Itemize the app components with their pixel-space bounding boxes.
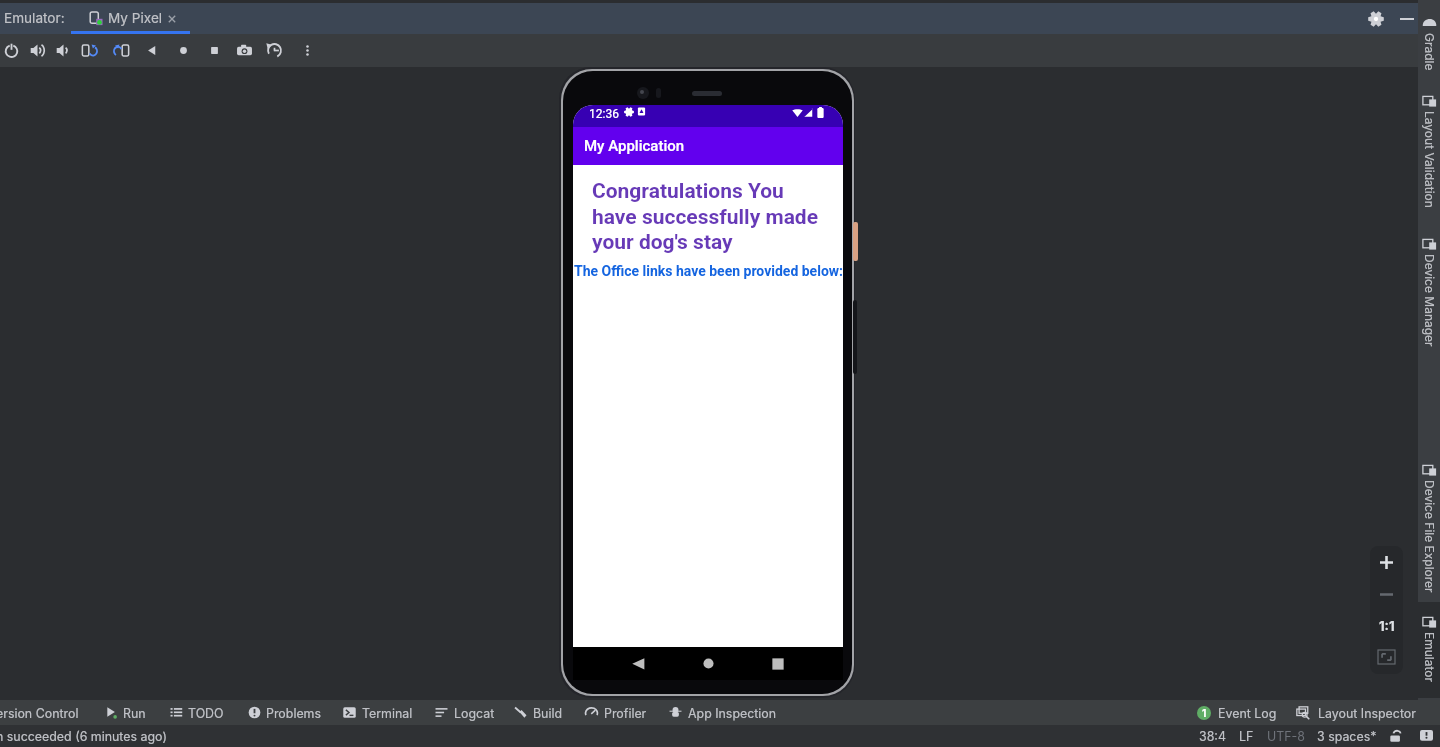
button[interactable]: App Inspection — [669, 700, 763, 725]
staticText: TODO — [188, 706, 224, 721]
staticText: App Inspection — [688, 706, 777, 721]
staticText: LF — [1239, 729, 1254, 744]
staticText: Layout Validation — [1422, 111, 1437, 208]
staticText: Terminal — [362, 706, 413, 721]
button[interactable]: ersion Control — [0, 700, 83, 725]
button[interactable]: More — [299, 42, 316, 59]
staticText: Run — [123, 706, 146, 721]
staticText: Emulator — [1422, 632, 1437, 682]
button[interactable]: Build — [514, 700, 608, 725]
button[interactable]: Volume down — [55, 42, 72, 59]
button[interactable]: Read-only toggle — [1389, 730, 1402, 743]
staticText: 3 spaces* — [1317, 729, 1377, 744]
staticText: Layout Inspector — [1318, 706, 1416, 721]
button[interactable]: Overview — [206, 42, 223, 59]
button[interactable]: Snapshots — [266, 42, 283, 59]
button[interactable]: Zoom out — [1370, 579, 1403, 610]
staticText: ersion Control — [0, 706, 79, 721]
button[interactable]: Rotate left — [81, 42, 98, 59]
button[interactable]: Run — [105, 700, 198, 725]
staticText: Problems — [266, 706, 322, 721]
button[interactable]: Power — [3, 42, 20, 59]
button[interactable]: Gradle — [1418, 31, 1440, 75]
button[interactable]: Profiler — [585, 700, 679, 725]
button[interactable]: 1:1 — [1370, 610, 1403, 641]
staticText: 1 — [1202, 707, 1207, 719]
button[interactable]: Home — [175, 42, 192, 59]
staticText: My Application — [584, 137, 685, 155]
staticText: Logcat — [454, 706, 495, 721]
staticText: Congratulations You have successfully ma… — [592, 179, 824, 254]
staticText: The Office links have been provided belo… — [574, 263, 843, 279]
button[interactable]: My Pixel — [71, 3, 190, 34]
staticText: Device Manager — [1422, 254, 1437, 347]
button[interactable]: Notifications — [1423, 718, 1436, 731]
staticText: 12:36 — [589, 107, 619, 121]
button[interactable]: 1 — [1197, 700, 1256, 725]
button[interactable]: Hide — [1399, 11, 1415, 27]
staticText: Emulator: — [4, 10, 65, 26]
button[interactable]: Emulator — [1418, 613, 1440, 688]
staticText: Gradle — [1422, 33, 1437, 71]
button[interactable]: My Application — [573, 127, 843, 165]
button[interactable]: Back — [144, 42, 161, 59]
button[interactable]: Device Manager — [1418, 235, 1440, 345]
staticText: Profiler — [604, 706, 647, 721]
staticText: h succeeded (6 minutes ago) — [0, 729, 167, 744]
button[interactable]: Home — [703, 658, 714, 669]
button[interactable]: Back — [632, 658, 645, 671]
button[interactable]: TODO — [170, 700, 263, 725]
button[interactable]: Device File Explorer — [1418, 461, 1440, 591]
staticText: Device File Explorer — [1422, 480, 1437, 593]
button[interactable]: Fit to screen — [1370, 641, 1403, 672]
button[interactable]: Zoom in — [1370, 546, 1403, 579]
staticText: Event Log — [1218, 706, 1277, 721]
button[interactable]: Volume up — [29, 42, 46, 59]
button[interactable]: Layout Validation — [1418, 92, 1440, 217]
button[interactable]: Settings — [1368, 11, 1384, 27]
button[interactable]: Recent apps — [772, 658, 784, 670]
button[interactable]: Problems — [248, 700, 341, 725]
button[interactable]: Rotate right — [113, 42, 130, 59]
button[interactable]: Terminal — [343, 700, 437, 725]
button[interactable]: Take screenshot — [236, 42, 253, 59]
button[interactable]: Logcat — [435, 700, 529, 725]
button[interactable]: Notifications — [1420, 730, 1433, 743]
staticText: 38:4 — [1199, 729, 1226, 744]
staticText: My Pixel — [108, 10, 163, 26]
staticText: Build — [533, 706, 563, 721]
staticText: 1:1 — [1379, 618, 1395, 634]
staticText: UTF-8 — [1267, 729, 1305, 744]
button[interactable]: Layout Inspector — [1296, 700, 1394, 725]
